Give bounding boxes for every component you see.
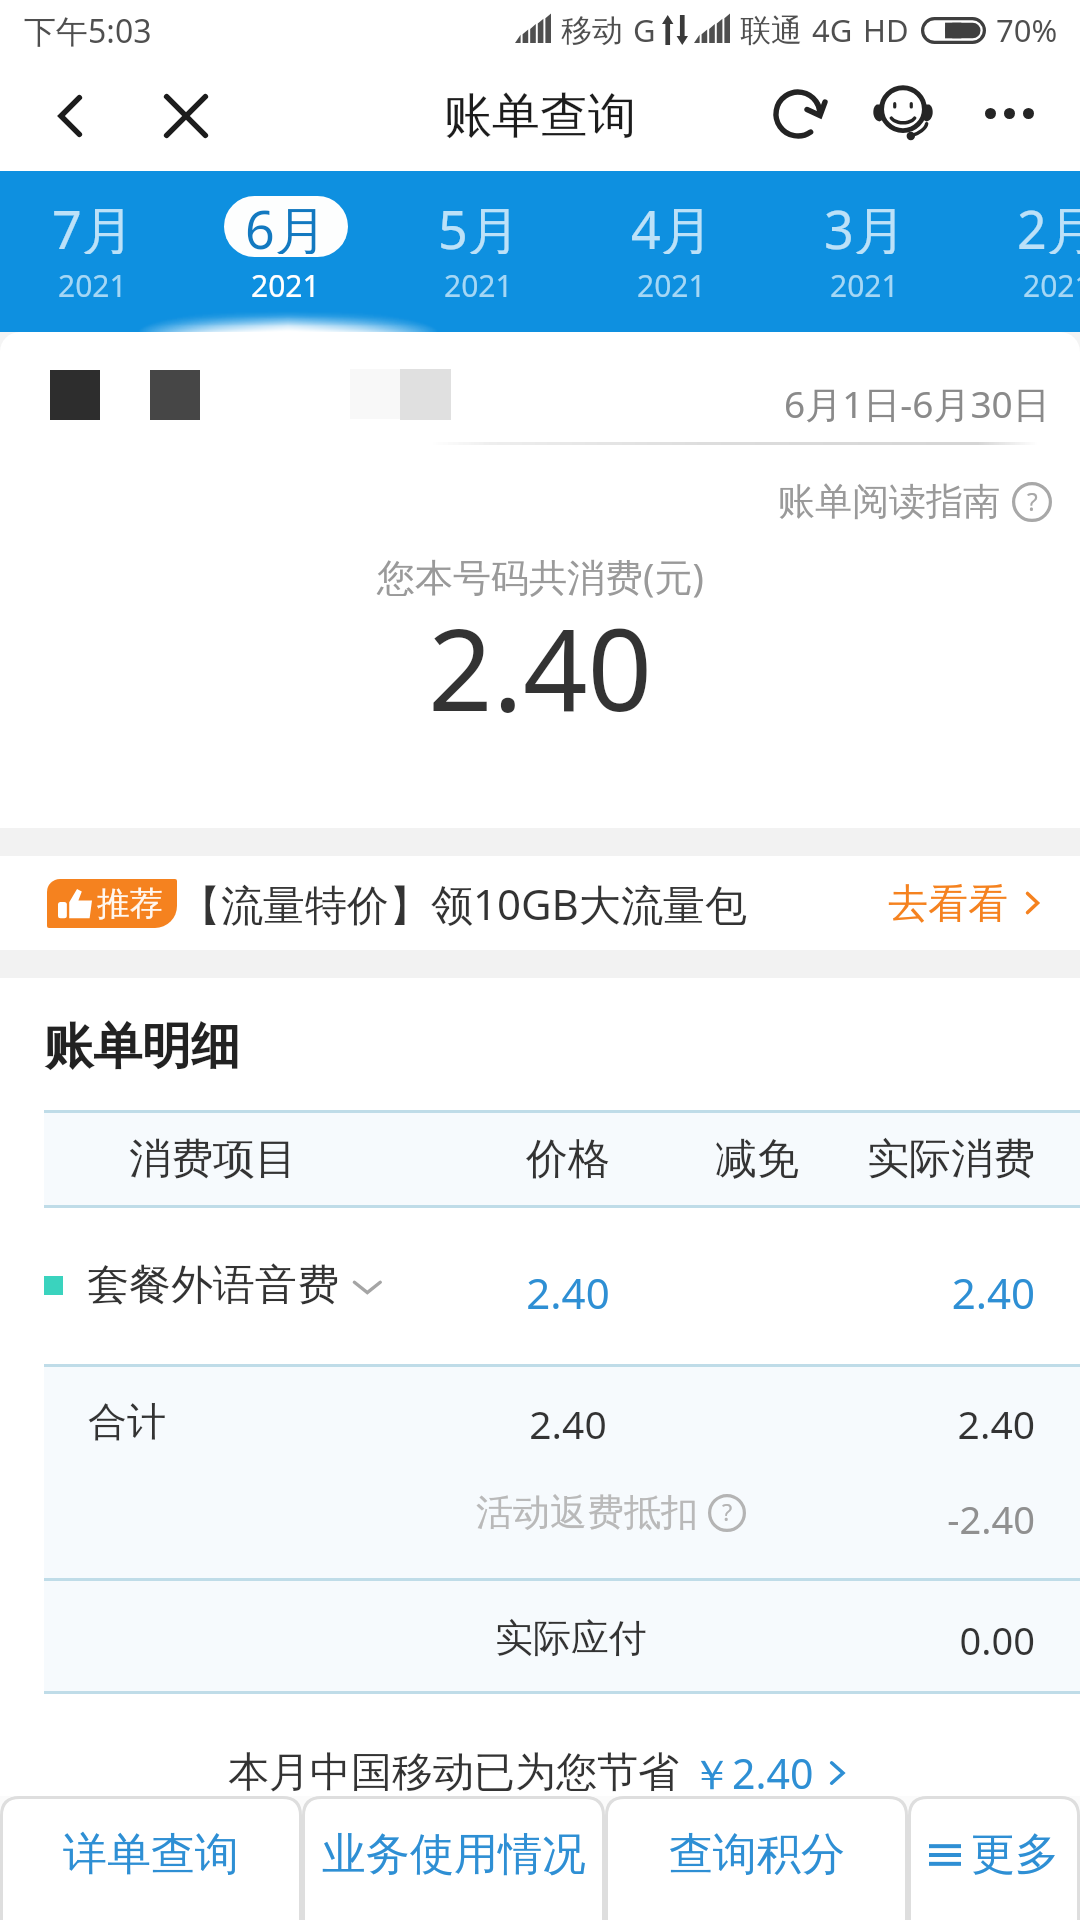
staticText: 合计 — [88, 1397, 166, 1446]
button[interactable]: Refresh — [757, 70, 849, 162]
staticText: 【流量特价】领10GB大流量包 — [179, 875, 747, 932]
staticText: 2021 — [1023, 265, 1080, 306]
staticText: 推荐 — [97, 883, 163, 925]
staticText: 2.40 — [418, 1397, 718, 1450]
button[interactable]: 业务使用情况 — [302, 1796, 605, 1920]
staticText: 3月 — [824, 193, 906, 254]
staticText: 4G — [812, 9, 853, 51]
staticText: ? — [722, 1496, 733, 1528]
staticText: 实际应付 — [495, 1614, 647, 1662]
button[interactable]: 6月 — [189, 171, 382, 332]
staticText: 账单明细 — [44, 1016, 240, 1078]
staticText: 2.40 — [635, 1397, 1035, 1450]
button[interactable]: 5月 — [382, 171, 575, 332]
staticText: 查询积分 — [669, 1827, 845, 1882]
staticText: 联通 — [740, 11, 802, 50]
button[interactable]: 本月中国移动已为您节省 — [0, 1740, 1080, 1806]
staticText: 2021 — [637, 265, 706, 306]
staticText: 活动返费抵扣 — [476, 1489, 698, 1536]
staticText: 70% — [996, 9, 1058, 51]
staticText: 移动 — [561, 11, 623, 50]
staticText: 7月 — [52, 193, 134, 254]
staticText: 2.40 — [428, 590, 653, 744]
button[interactable]: 7月 — [0, 171, 189, 332]
staticText: 本月中国移动已为您节省 — [228, 1747, 679, 1799]
staticText: 2021 — [251, 265, 320, 306]
staticText: 您本号码共消费(元) — [377, 550, 704, 602]
button[interactable]: More options — [963, 70, 1055, 162]
staticText: HD — [863, 9, 909, 51]
staticText: 去看看 — [888, 878, 1008, 928]
staticText: G — [633, 9, 656, 51]
button[interactable]: 套餐外语音费 — [0, 1207, 1080, 1364]
staticText: 详单查询 — [63, 1827, 239, 1882]
staticText: 6月 — [245, 196, 327, 254]
staticText: 更多 — [971, 1827, 1059, 1882]
staticText: 账单查询 — [444, 86, 636, 146]
staticText: 2021 — [444, 265, 513, 306]
staticText: 价格 — [418, 1133, 718, 1186]
staticText: 2021 — [830, 265, 899, 306]
button[interactable]: 3月 — [768, 171, 961, 332]
staticText: 4月 — [631, 193, 713, 254]
staticText: ￥2.40 — [691, 1745, 814, 1801]
staticText: 2021 — [58, 265, 127, 306]
staticText: ? — [1027, 484, 1038, 518]
staticText: 2.40 — [635, 1264, 1035, 1321]
button[interactable]: 推荐 — [0, 856, 1080, 950]
button[interactable]: 详单查询 — [0, 1796, 302, 1920]
staticText: 消费项目 — [129, 1133, 297, 1186]
staticText: -2.40 — [635, 1493, 1035, 1545]
button[interactable]: 账单阅读指南 — [778, 478, 1052, 525]
button[interactable]: Back — [26, 70, 118, 162]
staticText: 下午5:03 — [24, 9, 152, 53]
button[interactable]: Close — [140, 70, 232, 162]
staticText: 2月 — [1017, 193, 1080, 254]
staticText: 实际消费 — [635, 1133, 1035, 1186]
button[interactable]: 2月 — [961, 171, 1080, 332]
staticText: 账单阅读指南 — [778, 478, 1000, 525]
staticText: 套餐外语音费 — [87, 1259, 339, 1312]
button[interactable]: 4月 — [575, 171, 768, 332]
staticText: 业务使用情况 — [322, 1827, 586, 1882]
staticText: 5月 — [438, 193, 520, 254]
staticText: 0.00 — [635, 1614, 1035, 1666]
staticText: 减免 — [607, 1133, 907, 1186]
button[interactable]: 查询积分 — [605, 1796, 908, 1920]
button[interactable]: 更多 — [908, 1796, 1080, 1920]
button[interactable]: Customer service — [857, 70, 949, 162]
staticText: 6月1日-6月30日 — [784, 378, 1050, 429]
staticText: 2.40 — [418, 1264, 718, 1321]
